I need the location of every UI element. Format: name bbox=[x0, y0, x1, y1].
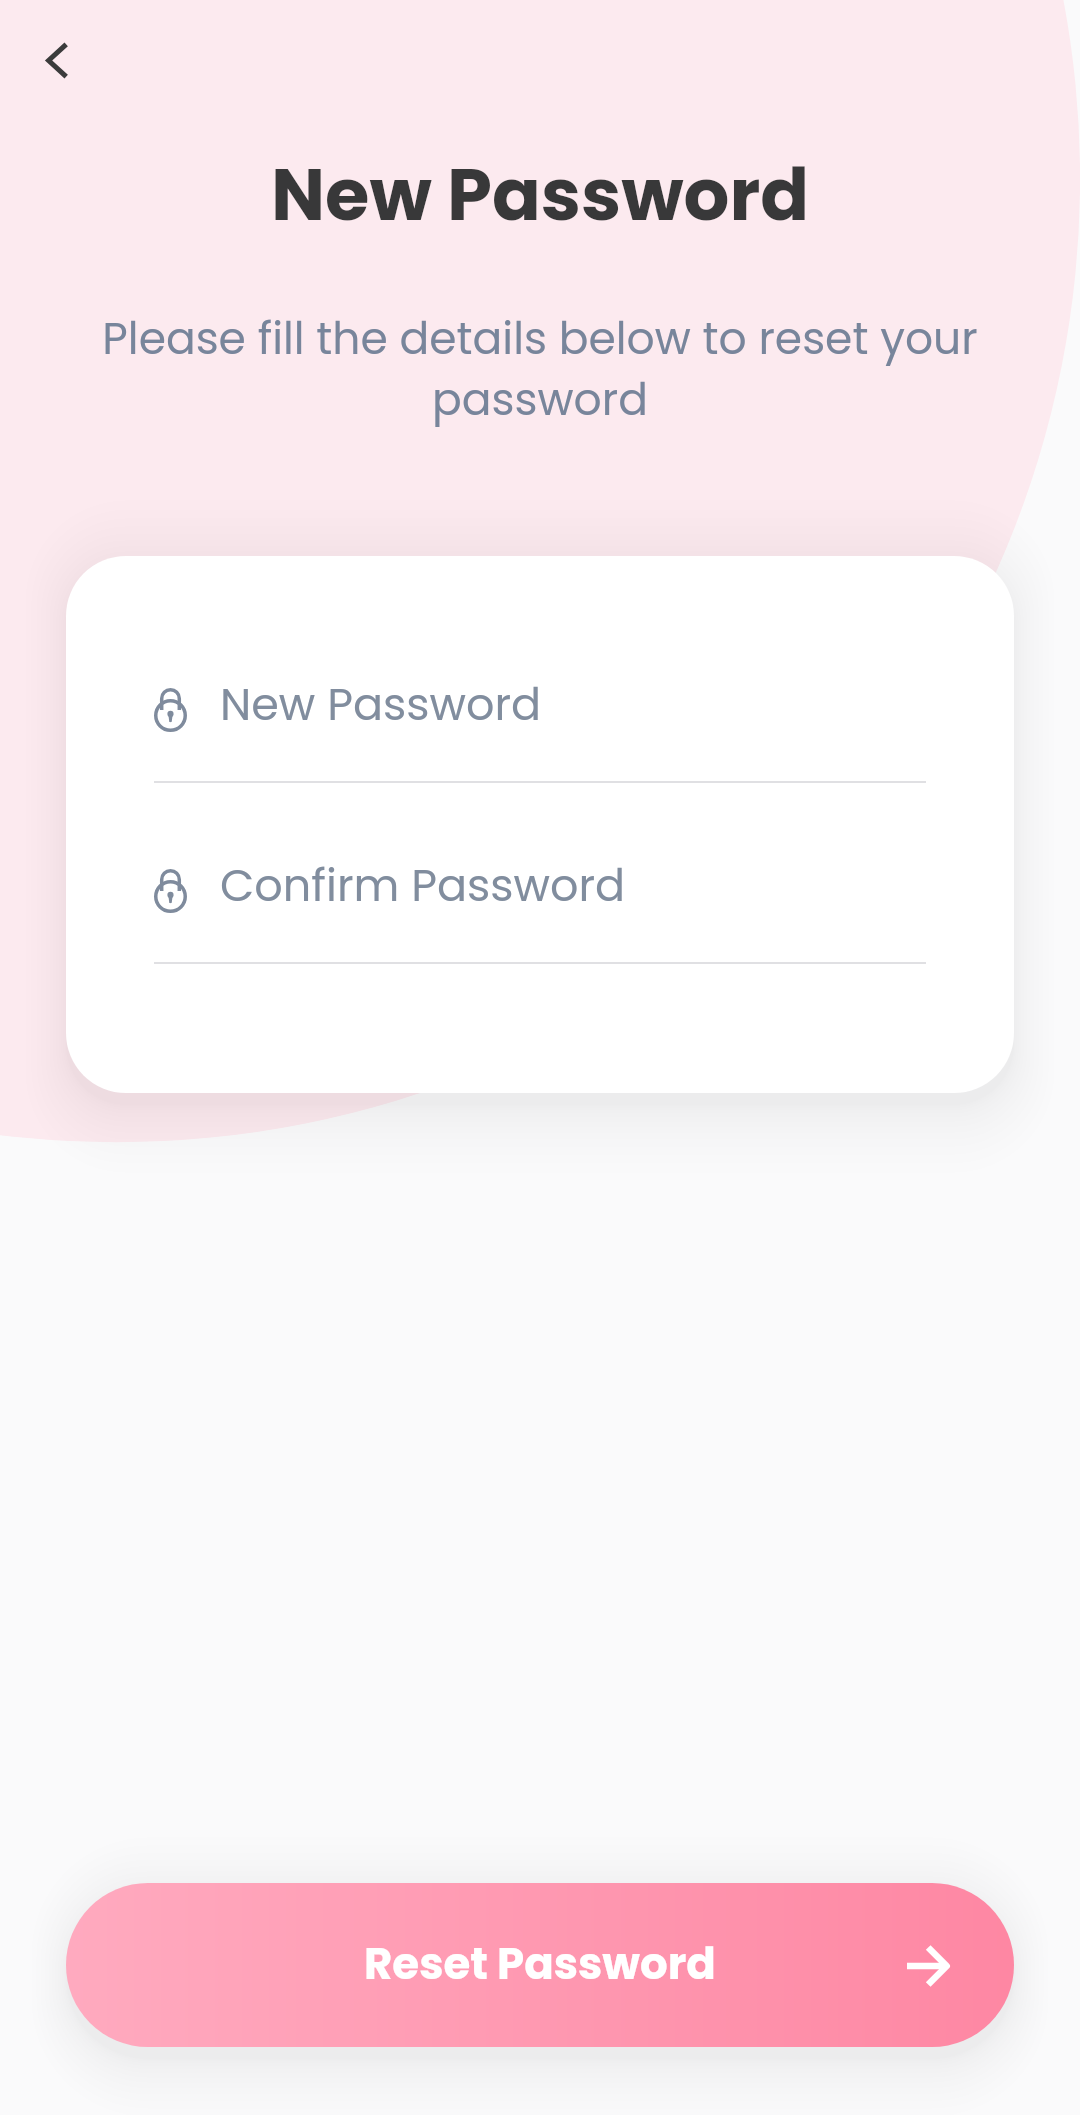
staticText: New Password bbox=[220, 673, 542, 735]
staticText: New Password bbox=[0, 144, 1080, 245]
button[interactable]: Confirm Password bbox=[154, 818, 926, 928]
staticText: Confirm Password bbox=[220, 854, 626, 916]
button[interactable]: Reset Password bbox=[66, 1883, 1014, 2047]
button[interactable]: Back bbox=[28, 31, 84, 87]
button[interactable]: New Password bbox=[154, 637, 926, 747]
staticText: Reset Password bbox=[364, 1933, 716, 1994]
staticText: Please fill the details below to reset y… bbox=[0, 308, 1080, 430]
